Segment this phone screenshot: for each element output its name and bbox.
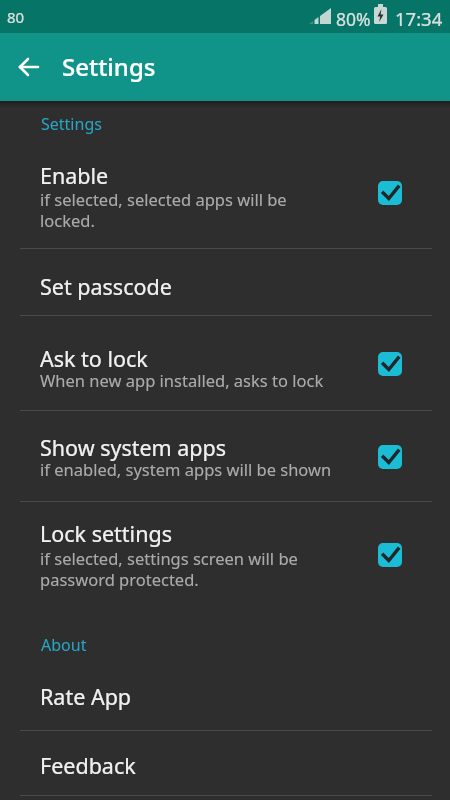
button[interactable] (378, 181, 402, 205)
staticText: When new app installed, asks to lock (40, 369, 324, 391)
button[interactable]: Lock settings (0, 501, 450, 620)
staticText: Show system apps (40, 433, 227, 462)
staticText: Ask to lock (40, 344, 148, 373)
staticText: Settings (41, 113, 102, 135)
staticText: if enabled, system apps will be shown (40, 458, 332, 480)
button[interactable]: Set passcode (0, 248, 450, 315)
staticText: if selected, settings screen will be pas… (40, 547, 298, 591)
staticText: 80% (336, 7, 371, 31)
button[interactable] (378, 445, 402, 469)
staticText: 80 (7, 7, 25, 27)
staticText: Settings (62, 50, 156, 83)
staticText: About (41, 634, 87, 656)
button[interactable] (10, 48, 48, 86)
button[interactable]: Ask to lock (0, 315, 450, 410)
staticText: Feedback (40, 751, 136, 780)
staticText: 17:34 (395, 6, 443, 31)
button[interactable] (378, 543, 402, 567)
staticText: Lock settings (40, 519, 172, 548)
button[interactable]: Enable (0, 146, 450, 248)
button[interactable]: Show system apps (0, 410, 450, 501)
button[interactable] (378, 352, 402, 376)
button[interactable]: Feedback (0, 730, 450, 795)
button[interactable]: Rate App (0, 665, 450, 730)
staticText: Rate App (40, 682, 132, 711)
staticText: Enable (40, 161, 109, 190)
staticText: if selected, selected apps will be locke… (40, 188, 287, 232)
staticText: Set passcode (40, 272, 172, 301)
